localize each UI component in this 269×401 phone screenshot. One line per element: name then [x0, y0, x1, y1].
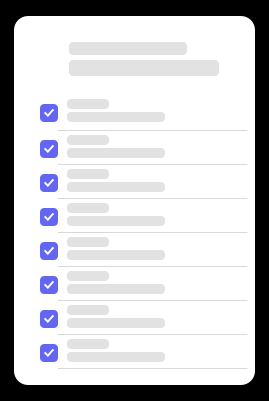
button[interactable]: Toggle item — [40, 271, 58, 294]
button[interactable]: Toggle item — [40, 135, 58, 158]
button[interactable]: Toggle item — [40, 237, 58, 260]
button[interactable]: Toggle item — [40, 99, 58, 122]
button[interactable]: Toggle item — [40, 339, 58, 362]
button[interactable]: Toggle item — [40, 169, 58, 192]
button[interactable]: Toggle item — [40, 305, 58, 328]
button[interactable]: Toggle item — [40, 203, 58, 226]
